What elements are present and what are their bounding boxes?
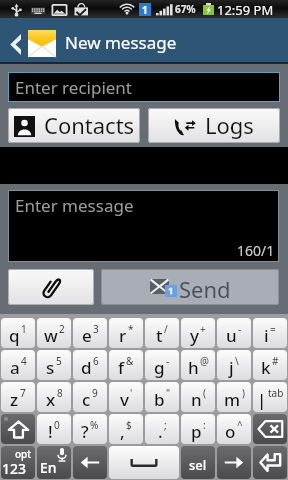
button[interactable]: Enter message — [8, 190, 279, 262]
staticText: w — [44, 324, 58, 347]
staticText: | — [257, 388, 267, 411]
staticText: 5 — [56, 354, 62, 368]
staticText: , — [120, 420, 125, 443]
button[interactable]: t — [145, 318, 179, 348]
staticText: b — [154, 388, 165, 411]
button[interactable]: b — [145, 382, 179, 412]
button[interactable]: p — [181, 414, 215, 444]
staticText: @ — [200, 354, 209, 368]
button[interactable]: | — [253, 382, 287, 412]
button[interactable]: n — [181, 382, 215, 412]
button[interactable]: v — [109, 382, 143, 412]
button[interactable]: En — [37, 446, 71, 479]
button[interactable]: Navigate up — [0, 18, 60, 64]
button[interactable]: q — [1, 318, 35, 348]
staticText: = — [270, 322, 276, 336]
other: Voice input — [57, 448, 67, 462]
button[interactable]: o — [217, 414, 251, 444]
button[interactable]: r — [109, 318, 143, 348]
staticText: 1 — [21, 322, 27, 336]
button[interactable]: sel — [181, 446, 215, 479]
staticText: 12:59 PM — [217, 1, 274, 19]
staticText: r — [119, 324, 127, 347]
staticText: c — [82, 388, 91, 411]
staticText: Enter message — [15, 194, 134, 217]
button[interactable]: i — [253, 318, 287, 348]
staticText: j — [229, 356, 234, 379]
button[interactable]: . — [145, 414, 179, 444]
staticText: k — [261, 356, 271, 379]
button[interactable]: x — [37, 382, 71, 412]
staticText: ^ — [237, 418, 243, 432]
button[interactable]: Enter — [253, 446, 287, 479]
button[interactable]: Contacts — [8, 108, 140, 143]
button[interactable]: h — [181, 350, 215, 380]
staticText: ) — [242, 386, 245, 400]
button[interactable]: Move right — [217, 446, 251, 479]
button[interactable]: Send — [101, 269, 279, 305]
staticText: opt — [15, 447, 32, 461]
staticText: 4 — [21, 354, 27, 368]
staticText: x — [46, 388, 56, 411]
staticText: s — [46, 356, 55, 379]
staticText: e — [82, 324, 92, 347]
staticText: ? — [81, 420, 89, 443]
staticText: n — [191, 388, 202, 411]
button[interactable]: a — [1, 350, 35, 380]
staticText: # — [272, 354, 279, 368]
button[interactable]: Attach — [8, 269, 94, 305]
staticText: d — [81, 356, 92, 379]
staticText: i — [264, 324, 269, 347]
button[interactable]: k — [253, 350, 287, 380]
button[interactable]: y — [181, 318, 215, 348]
staticText: $ — [126, 418, 132, 432]
staticText: m — [224, 388, 241, 411]
staticText: 1 — [142, 3, 148, 16]
button[interactable]: m — [217, 382, 251, 412]
staticText: 2 — [59, 322, 65, 336]
staticText: * — [128, 322, 134, 336]
button[interactable]: j — [217, 350, 251, 380]
button[interactable]: f — [109, 350, 143, 380]
button[interactable]: g — [145, 350, 179, 380]
staticText: / — [164, 322, 168, 336]
button[interactable]: ! — [37, 414, 71, 444]
button[interactable]: Backspace — [253, 414, 287, 444]
staticText: Enter recipient — [15, 76, 133, 99]
staticText: New message — [65, 31, 177, 54]
staticText: y — [190, 324, 199, 347]
staticText: p — [191, 420, 202, 443]
staticText: ; — [164, 418, 167, 432]
staticText: 8 — [57, 386, 63, 400]
staticText: - — [166, 354, 170, 368]
staticText: a — [10, 356, 20, 379]
button[interactable]: ? — [73, 414, 107, 444]
button[interactable]: e — [73, 318, 107, 348]
button[interactable]: c — [73, 382, 107, 412]
staticText: z — [10, 388, 19, 411]
button[interactable]: Shift — [1, 414, 35, 444]
staticText: % — [90, 418, 99, 432]
button[interactable]: Logs — [148, 108, 280, 143]
button[interactable]: w — [37, 318, 71, 348]
other: Space — [130, 457, 158, 468]
staticText: + — [200, 322, 206, 336]
button[interactable]: Move left — [73, 446, 107, 479]
button[interactable]: , — [109, 414, 143, 444]
other: Move left — [80, 456, 100, 469]
button[interactable]: Enter recipient — [8, 72, 280, 102]
staticText: 160/1 — [237, 241, 275, 260]
button[interactable]: d — [73, 350, 107, 380]
staticText: 67% — [175, 2, 196, 16]
staticText: tab — [268, 386, 284, 400]
staticText: 123 — [2, 459, 27, 478]
button[interactable]: s — [37, 350, 71, 380]
staticText: 7 — [20, 386, 26, 400]
button[interactable]: z — [1, 382, 35, 412]
staticText: En — [40, 458, 57, 477]
staticText: h — [188, 356, 199, 379]
button[interactable]: Space — [109, 446, 179, 479]
button[interactable]: u — [217, 318, 251, 348]
button[interactable]: opt — [1, 446, 35, 479]
staticText: ! — [48, 420, 53, 443]
